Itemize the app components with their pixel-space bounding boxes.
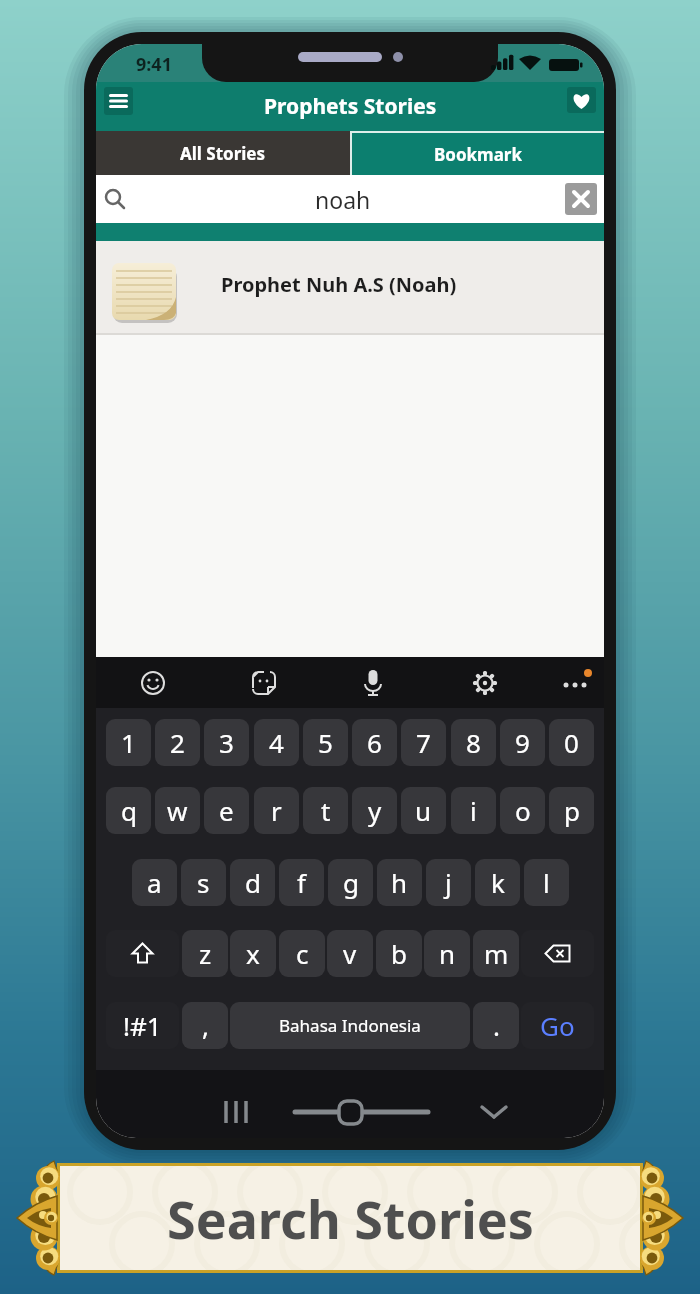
button[interactable]: s [181, 859, 226, 906]
button[interactable]: o [500, 787, 545, 834]
staticText: b [391, 936, 407, 971]
button[interactable]: 7 [401, 719, 446, 766]
staticText: 9:41 [136, 52, 172, 77]
staticText: 0 [564, 725, 579, 760]
button[interactable]: 3 [204, 719, 249, 766]
button[interactable]: , [182, 1002, 228, 1049]
staticText: Go [540, 1008, 575, 1043]
button[interactable]: h [377, 859, 422, 906]
button[interactable] [104, 87, 133, 115]
staticText: r [271, 793, 282, 828]
button[interactable]: Go [521, 1002, 594, 1049]
button[interactable] [196, 1080, 236, 1120]
button[interactable]: Search Stories [60, 1166, 640, 1270]
button[interactable]: . [473, 1002, 519, 1049]
staticText: i [470, 793, 477, 828]
button[interactable]: t [303, 787, 348, 834]
staticText: a [147, 865, 162, 900]
staticText: 8 [466, 725, 481, 760]
button[interactable]: 6 [352, 719, 397, 766]
staticText: q [121, 793, 137, 828]
staticText: u [415, 793, 432, 828]
staticText: y [368, 793, 382, 828]
button[interactable]: q [106, 787, 151, 834]
staticText: n [439, 936, 456, 971]
staticText: v [343, 936, 357, 971]
staticText: 9 [515, 725, 530, 760]
staticText: h [391, 865, 408, 900]
staticText: Search Stories [167, 1183, 534, 1254]
staticText: noah [315, 184, 371, 215]
button[interactable]: a [132, 859, 177, 906]
button[interactable]: v [327, 930, 373, 977]
button[interactable]: j [426, 859, 471, 906]
button[interactable]: f [279, 859, 324, 906]
button[interactable]: 2 [155, 719, 200, 766]
button[interactable] [106, 930, 179, 977]
button[interactable] [567, 87, 596, 113]
staticText: 4 [269, 725, 284, 760]
staticText: . [493, 1008, 500, 1043]
button[interactable]: d [230, 859, 275, 906]
button[interactable]: g [328, 859, 373, 906]
staticText: 7 [416, 725, 431, 760]
button[interactable]: u [401, 787, 446, 834]
button[interactable]: x [230, 930, 276, 977]
button[interactable]: 5 [303, 719, 348, 766]
staticText: All Stories [180, 142, 266, 165]
staticText: l [543, 865, 550, 900]
button[interactable]: n [424, 930, 470, 977]
button[interactable]: r [254, 787, 299, 834]
staticText: m [484, 936, 509, 971]
staticText: e [219, 793, 234, 828]
button[interactable]: 4 [254, 719, 299, 766]
button[interactable]: p [549, 787, 594, 834]
staticText: d [245, 865, 261, 900]
staticText: k [491, 865, 505, 900]
button[interactable]: !#1 [106, 1002, 179, 1049]
button[interactable]: Bahasa Indonesia [230, 1002, 470, 1049]
staticText: w [167, 793, 188, 828]
button[interactable]: c [279, 930, 325, 977]
staticText: t [321, 793, 331, 828]
staticText: f [297, 865, 306, 900]
button[interactable]: 9 [500, 719, 545, 766]
button[interactable]: Bookmark [350, 131, 604, 175]
button[interactable]: All Stories [96, 131, 350, 175]
staticText: o [515, 793, 531, 828]
button[interactable]: i [451, 787, 496, 834]
staticText: x [246, 936, 260, 971]
staticText: j [445, 865, 452, 900]
staticText: Prophets Stories [264, 92, 437, 121]
staticText: g [343, 865, 359, 900]
button[interactable] [426, 1080, 466, 1120]
staticText: z [199, 936, 212, 971]
button[interactable]: Prophet Nuh A.S (Noah) [96, 241, 604, 335]
button[interactable]: b [376, 930, 422, 977]
staticText: c [296, 936, 309, 971]
button[interactable]: k [475, 859, 520, 906]
button[interactable]: l [524, 859, 569, 906]
button[interactable] [565, 183, 597, 215]
staticText: Bookmark [434, 143, 522, 166]
button[interactable]: y [352, 787, 397, 834]
staticText: 3 [219, 725, 234, 760]
staticText: s [197, 865, 210, 900]
button[interactable]: 8 [451, 719, 496, 766]
staticText: 2 [170, 725, 185, 760]
staticText: Prophet Nuh A.S (Noah) [221, 271, 457, 298]
staticText: !#1 [123, 1008, 162, 1043]
staticText: p [564, 793, 580, 828]
button[interactable]: z [182, 930, 228, 977]
button[interactable]: e [204, 787, 249, 834]
button[interactable]: w [155, 787, 200, 834]
staticText: 6 [367, 725, 382, 760]
staticText: 1 [121, 725, 136, 760]
staticText: , [202, 1008, 209, 1043]
button[interactable]: 0 [549, 719, 594, 766]
staticText: Bahasa Indonesia [279, 1014, 421, 1037]
button[interactable]: m [473, 930, 519, 977]
staticText: 5 [318, 725, 333, 760]
button[interactable]: 1 [106, 719, 151, 766]
button[interactable] [521, 930, 594, 977]
